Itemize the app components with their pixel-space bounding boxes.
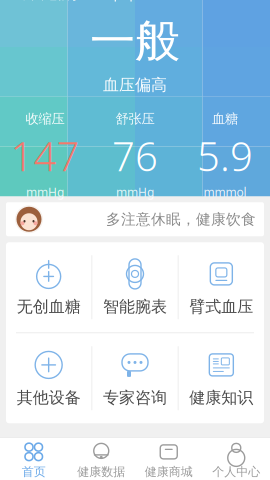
staticText: 健康商城 <box>145 464 193 479</box>
staticText: 臂式血压 <box>189 297 253 317</box>
staticText: mmHg <box>116 184 154 200</box>
staticText: 中国电信 <box>18 0 70 3</box>
button[interactable]: 臂式血压 <box>179 242 264 332</box>
button[interactable]: 其他设备 <box>6 333 91 423</box>
staticText: 健康知识 <box>189 388 253 408</box>
staticText: 76 <box>112 129 158 182</box>
button[interactable]: 无创血糖 <box>6 242 91 332</box>
staticText: mmmol <box>203 184 246 200</box>
staticText: 一般 <box>90 13 180 69</box>
staticText: 血压偏高 <box>103 75 167 95</box>
staticText: 无创血糖 <box>17 297 81 317</box>
staticText: 血糖 <box>212 111 238 127</box>
staticText: 健康数据 <box>77 464 125 479</box>
staticText: 智能腕表 <box>103 297 167 317</box>
staticText: 下午3:23 <box>108 0 166 4</box>
staticText: 舒张压 <box>115 111 154 127</box>
button[interactable]: 健康商城 <box>135 438 202 480</box>
button[interactable]: 健康数据 <box>67 438 135 480</box>
staticText: ◗ <box>72 0 79 2</box>
staticText: 收缩压 <box>25 111 64 127</box>
staticText: 其他设备 <box>17 388 81 408</box>
staticText: 首页 <box>22 464 46 479</box>
staticText: 专家咨询 <box>103 388 167 408</box>
button[interactable]: 智能腕表 <box>92 242 178 332</box>
button[interactable]: 首页 <box>0 438 67 480</box>
button[interactable]: 个人中心 <box>202 438 270 480</box>
staticText: 147 <box>10 129 79 182</box>
button[interactable]: 多注意休眠，健康饮食 <box>6 202 264 236</box>
staticText: mmHg <box>26 184 64 200</box>
button[interactable]: 专家咨询 <box>92 333 178 423</box>
staticText: 个人中心 <box>212 464 260 479</box>
staticText: 多注意休眠，健康饮食 <box>106 210 256 228</box>
button[interactable]: 健康知识 <box>179 333 264 423</box>
staticText: 5.9 <box>197 129 253 182</box>
